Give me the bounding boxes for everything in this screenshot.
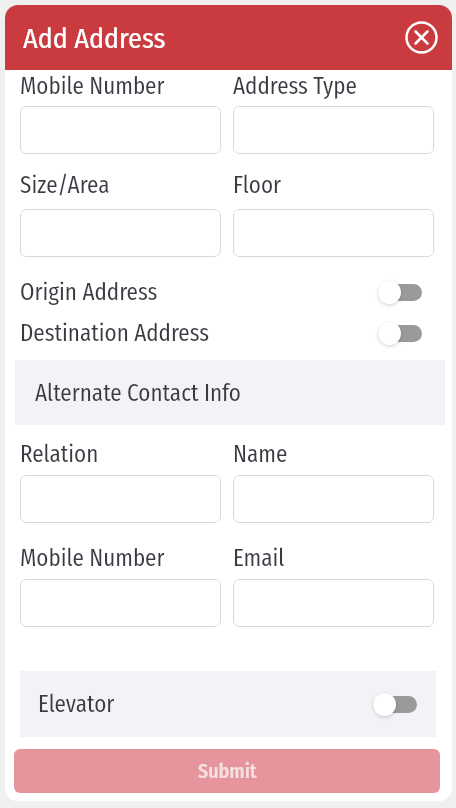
staticText: Size/Area: [20, 171, 110, 199]
button[interactable]: [233, 209, 434, 257]
staticText: Address Type: [233, 72, 357, 100]
button[interactable]: [233, 579, 434, 627]
staticText: Origin Address: [20, 278, 158, 306]
button[interactable]: [378, 321, 422, 345]
button[interactable]: [373, 692, 417, 716]
button[interactable]: [20, 209, 221, 257]
staticText: Submit: [198, 759, 257, 783]
staticText: Mobile Number: [20, 544, 165, 572]
staticText: Add Address: [23, 22, 166, 56]
staticText: Destination Address: [20, 319, 210, 347]
staticText: Mobile Number: [20, 72, 165, 100]
button[interactable]: [378, 280, 422, 304]
staticText: Floor: [233, 171, 282, 199]
button[interactable]: [20, 106, 221, 154]
staticText: Elevator: [38, 690, 115, 718]
button[interactable]: [233, 475, 434, 523]
staticText: Alternate Contact Info: [35, 379, 241, 407]
button[interactable]: [20, 475, 221, 523]
staticText: Name: [233, 440, 288, 468]
button[interactable]: [405, 21, 438, 54]
staticText: Relation: [20, 440, 99, 468]
staticText: Email: [233, 544, 285, 572]
button[interactable]: [20, 579, 221, 627]
button[interactable]: [233, 106, 434, 154]
button[interactable]: Submit: [14, 749, 440, 793]
